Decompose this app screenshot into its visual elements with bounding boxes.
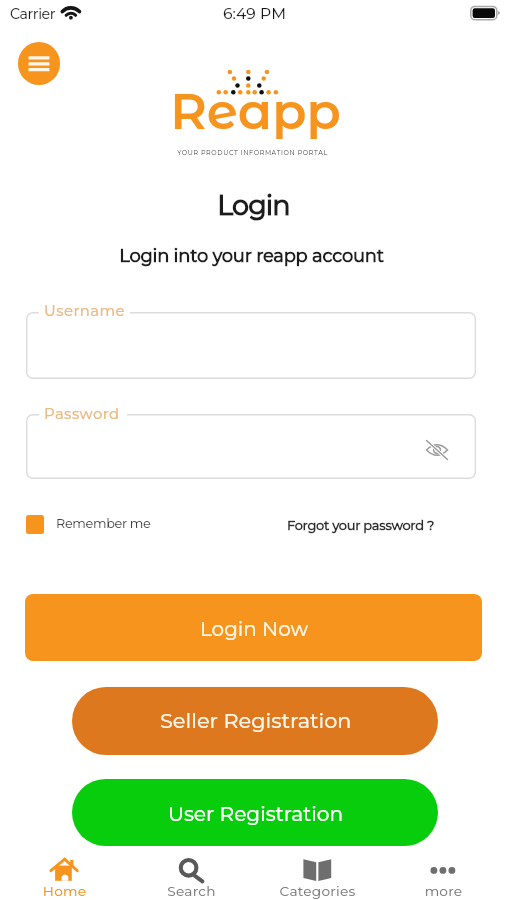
button[interactable]: Remember me — [26, 515, 44, 534]
staticText: Forgot your password ? — [287, 517, 434, 533]
staticText: Search — [0, 883, 445, 900]
button[interactable] — [0, 850, 127, 900]
button[interactable]: Username — [26, 312, 476, 379]
staticText: Login — [0, 189, 507, 222]
staticText: Login Now — [200, 617, 309, 641]
button[interactable] — [254, 850, 381, 900]
staticText: Home — [0, 883, 318, 900]
button[interactable]: Forgot your password ? — [287, 517, 434, 533]
staticText: Reapp — [2, 81, 507, 142]
staticText: Login into your reapp account — [0, 245, 505, 267]
button[interactable] — [381, 850, 507, 900]
button[interactable]: Seller Registration — [72, 687, 438, 755]
staticText: YOUR PRODUCT INFORMATION PORTAL — [0, 149, 506, 157]
staticText: User Registration — [168, 802, 344, 827]
staticText: Seller Registration — [160, 708, 352, 733]
staticText: Categories — [64, 883, 507, 900]
button[interactable]: Show password — [417, 430, 457, 470]
button[interactable] — [127, 850, 254, 900]
staticText: Carrier — [10, 5, 56, 22]
button[interactable]: Open navigation menu — [18, 42, 60, 85]
staticText: Password — [44, 405, 120, 423]
button[interactable]: Password — [26, 414, 476, 479]
button[interactable]: Login Now — [25, 594, 482, 661]
staticText: Remember me — [56, 516, 151, 532]
staticText: 6:49 PM — [1, 4, 507, 23]
staticText: Username — [44, 302, 126, 320]
button[interactable]: User Registration — [72, 779, 438, 846]
staticText: more — [190, 883, 507, 900]
